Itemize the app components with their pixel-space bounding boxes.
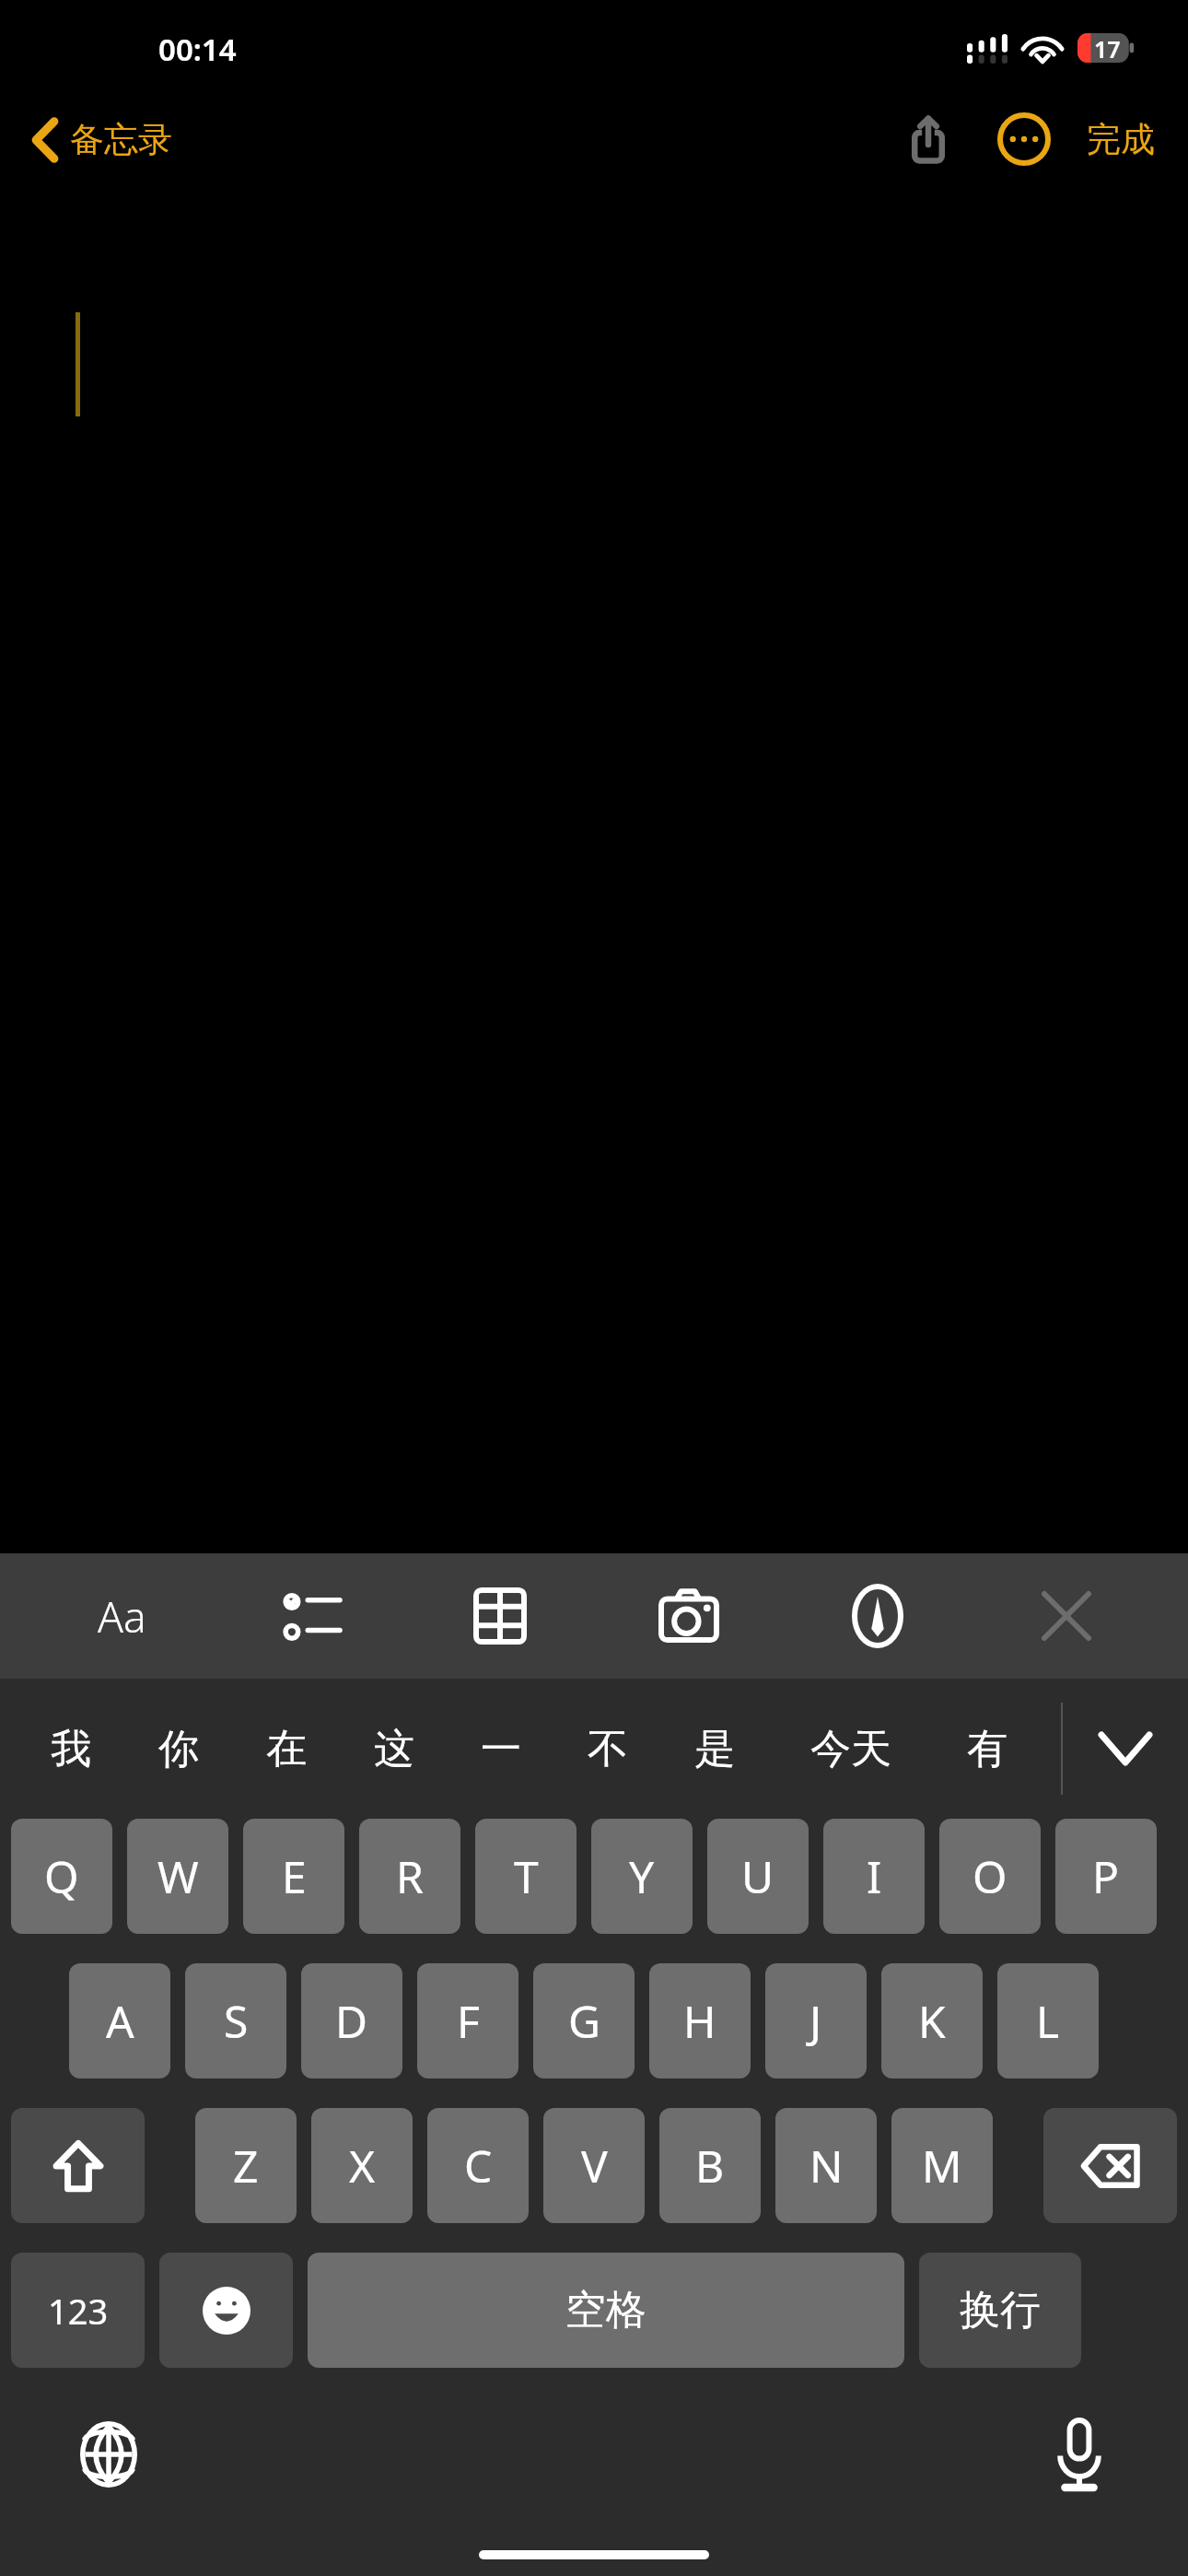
button[interactable]: Expand candidates: [1063, 1679, 1188, 1819]
button[interactable]: I: [823, 1819, 925, 1934]
button[interactable]: 空格: [308, 2253, 904, 2368]
button[interactable]: 在: [232, 1679, 340, 1819]
button[interactable]: Text format: [28, 1553, 216, 1679]
staticText: E: [282, 1846, 307, 1906]
staticText: F: [457, 1991, 480, 2051]
button[interactable]: Y: [591, 1819, 693, 1934]
button[interactable]: Q: [11, 1819, 112, 1934]
staticText: 在: [266, 1724, 307, 1774]
button[interactable]: H: [649, 1963, 751, 2078]
staticText: Aa: [98, 1587, 146, 1645]
staticText: I: [867, 1846, 882, 1906]
staticText: G: [568, 1991, 600, 2051]
button[interactable]: 123: [11, 2253, 145, 2368]
button[interactable]: Dictation: [1024, 2399, 1135, 2510]
staticText: R: [396, 1846, 424, 1906]
staticText: 我: [51, 1724, 91, 1774]
staticText: 17: [1094, 33, 1121, 64]
button[interactable]: 这: [340, 1679, 448, 1819]
staticText: N: [809, 2136, 844, 2195]
staticText: 一: [481, 1724, 521, 1774]
button[interactable]: T: [475, 1819, 577, 1934]
staticText: Q: [44, 1846, 79, 1906]
staticText: O: [973, 1846, 1007, 1906]
button[interactable]: L: [997, 1963, 1099, 2078]
button[interactable]: F: [417, 1963, 518, 2078]
button[interactable]: J: [765, 1963, 867, 2078]
staticText: 是: [694, 1724, 735, 1774]
button[interactable]: S: [185, 1963, 286, 2078]
button[interactable]: 不: [554, 1679, 661, 1819]
staticText: 你: [158, 1724, 199, 1774]
button[interactable]: U: [707, 1819, 809, 1934]
button[interactable]: More options: [989, 104, 1059, 174]
button[interactable]: Next keyboard: [53, 2399, 164, 2510]
button[interactable]: Camera: [594, 1553, 783, 1679]
staticText: S: [224, 1991, 249, 2051]
button[interactable]: Checklist: [216, 1553, 405, 1679]
staticText: V: [581, 2136, 608, 2195]
button[interactable]: A: [69, 1963, 170, 2078]
staticText: K: [918, 1991, 946, 2051]
staticText: U: [741, 1846, 775, 1906]
staticText: 有: [967, 1724, 1007, 1774]
staticText: L: [1036, 1991, 1060, 2051]
button[interactable]: 有: [934, 1679, 1041, 1819]
button[interactable]: N: [775, 2108, 877, 2223]
button[interactable]: D: [301, 1963, 402, 2078]
staticText: P: [1092, 1846, 1120, 1906]
button[interactable]: Close: [972, 1553, 1160, 1679]
button[interactable]: 换行: [919, 2253, 1081, 2368]
button[interactable]: M: [891, 2108, 993, 2223]
button[interactable]: Z: [195, 2108, 297, 2223]
staticText: 这: [374, 1724, 414, 1774]
staticText: 123: [48, 2287, 109, 2335]
staticText: 不: [588, 1724, 628, 1774]
button[interactable]: K: [881, 1963, 983, 2078]
staticText: 00:14: [158, 29, 237, 70]
button[interactable]: Backspace: [1043, 2108, 1177, 2223]
button[interactable]: B: [659, 2108, 761, 2223]
staticText: M: [922, 2136, 962, 2195]
staticText: H: [683, 1991, 716, 2051]
staticText: Y: [629, 1846, 655, 1906]
button[interactable]: W: [127, 1819, 228, 1934]
button[interactable]: Emoji: [159, 2253, 293, 2368]
staticText: 完成: [1087, 118, 1155, 161]
button[interactable]: O: [939, 1819, 1041, 1934]
staticText: 换行: [960, 2285, 1041, 2336]
staticText: 空格: [565, 2285, 646, 2336]
staticText: B: [695, 2136, 725, 2195]
button[interactable]: Markup: [783, 1553, 972, 1679]
button[interactable]: V: [543, 2108, 645, 2223]
staticText: 备忘录: [70, 118, 172, 161]
button[interactable]: 完成: [1081, 109, 1160, 170]
staticText: W: [157, 1846, 199, 1906]
button[interactable]: Shift: [11, 2108, 145, 2223]
staticText: C: [464, 2136, 493, 2195]
button[interactable]: Table: [405, 1553, 594, 1679]
button[interactable]: 是: [661, 1679, 768, 1819]
staticText: Z: [233, 2136, 259, 2195]
button[interactable]: G: [533, 1963, 635, 2078]
button[interactable]: C: [427, 2108, 529, 2223]
staticText: X: [349, 2136, 376, 2195]
button[interactable]: X: [311, 2108, 413, 2223]
staticText: J: [809, 1991, 822, 2051]
button[interactable]: 你: [124, 1679, 232, 1819]
button[interactable]: 一: [448, 1679, 554, 1819]
staticText: 今天: [810, 1724, 891, 1774]
button[interactable]: E: [243, 1819, 344, 1934]
button[interactable]: Share: [893, 104, 963, 174]
staticText: T: [514, 1846, 539, 1906]
staticText: A: [106, 1991, 134, 2051]
button[interactable]: 备忘录: [26, 109, 180, 170]
button[interactable]: 今天: [768, 1679, 934, 1819]
staticText: D: [335, 1991, 368, 2051]
button[interactable]: R: [359, 1819, 460, 1934]
button[interactable]: P: [1055, 1819, 1157, 1934]
button[interactable]: 我: [17, 1679, 124, 1819]
